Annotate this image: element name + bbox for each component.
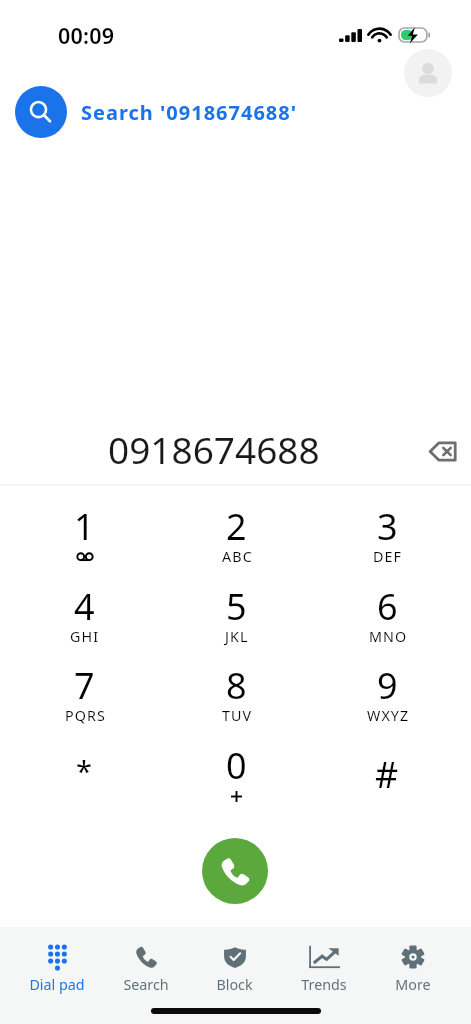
staticText: 0 xyxy=(226,741,247,790)
staticText: More xyxy=(395,975,431,994)
button[interactable]: More xyxy=(368,944,457,994)
button[interactable]: Search '0918674688' xyxy=(15,86,298,138)
staticText: Block xyxy=(216,975,253,994)
staticText: Search '0918674688' xyxy=(81,99,298,126)
button[interactable]: * xyxy=(14,741,154,821)
staticText: 00:09 xyxy=(58,21,115,50)
staticText: 7 xyxy=(74,661,95,710)
button[interactable]: 2 xyxy=(166,502,306,582)
staticText: 9 xyxy=(377,661,398,710)
button[interactable]: 8 xyxy=(166,661,306,741)
staticText: WXYZ xyxy=(367,706,410,725)
staticText: 2 xyxy=(226,502,247,551)
button[interactable]: Backspace xyxy=(418,427,466,475)
button[interactable]: 3 xyxy=(317,502,457,582)
staticText: Dial pad xyxy=(29,975,85,994)
button[interactable]: 7 xyxy=(14,661,154,741)
button[interactable]: Block xyxy=(190,944,279,994)
staticText: 8 xyxy=(226,661,247,710)
staticText: * xyxy=(76,751,92,790)
staticText: # xyxy=(375,750,399,799)
staticText: 1 xyxy=(74,502,95,551)
button[interactable]: 5 xyxy=(166,582,306,662)
button[interactable]: # xyxy=(317,741,457,821)
staticText: 3 xyxy=(377,502,398,551)
button[interactable]: 1 xyxy=(14,502,154,582)
staticText: 6 xyxy=(377,582,398,631)
staticText: 4 xyxy=(74,582,95,631)
staticText: 0918674688 xyxy=(108,424,320,474)
button[interactable]: Trends xyxy=(279,944,368,994)
staticText: MNO xyxy=(369,627,408,646)
button[interactable]: 6 xyxy=(317,582,457,662)
button[interactable]: Call xyxy=(202,838,268,904)
button[interactable]: Account xyxy=(404,49,452,97)
button[interactable]: 0 xyxy=(166,741,306,821)
button[interactable]: Dial pad xyxy=(12,944,101,994)
staticText: JKL xyxy=(225,627,249,646)
staticText: GHI xyxy=(70,627,100,646)
staticText: Trends xyxy=(301,975,347,994)
staticText: DEF xyxy=(373,547,403,566)
button[interactable]: 9 xyxy=(317,661,457,741)
button[interactable]: 4 xyxy=(14,582,154,662)
button[interactable]: Search xyxy=(101,944,190,994)
staticText: ABC xyxy=(222,547,253,566)
staticText: 5 xyxy=(226,582,247,631)
staticText: Search xyxy=(123,975,169,994)
staticText: PQRS xyxy=(65,706,106,725)
staticText: TUV xyxy=(222,706,253,725)
